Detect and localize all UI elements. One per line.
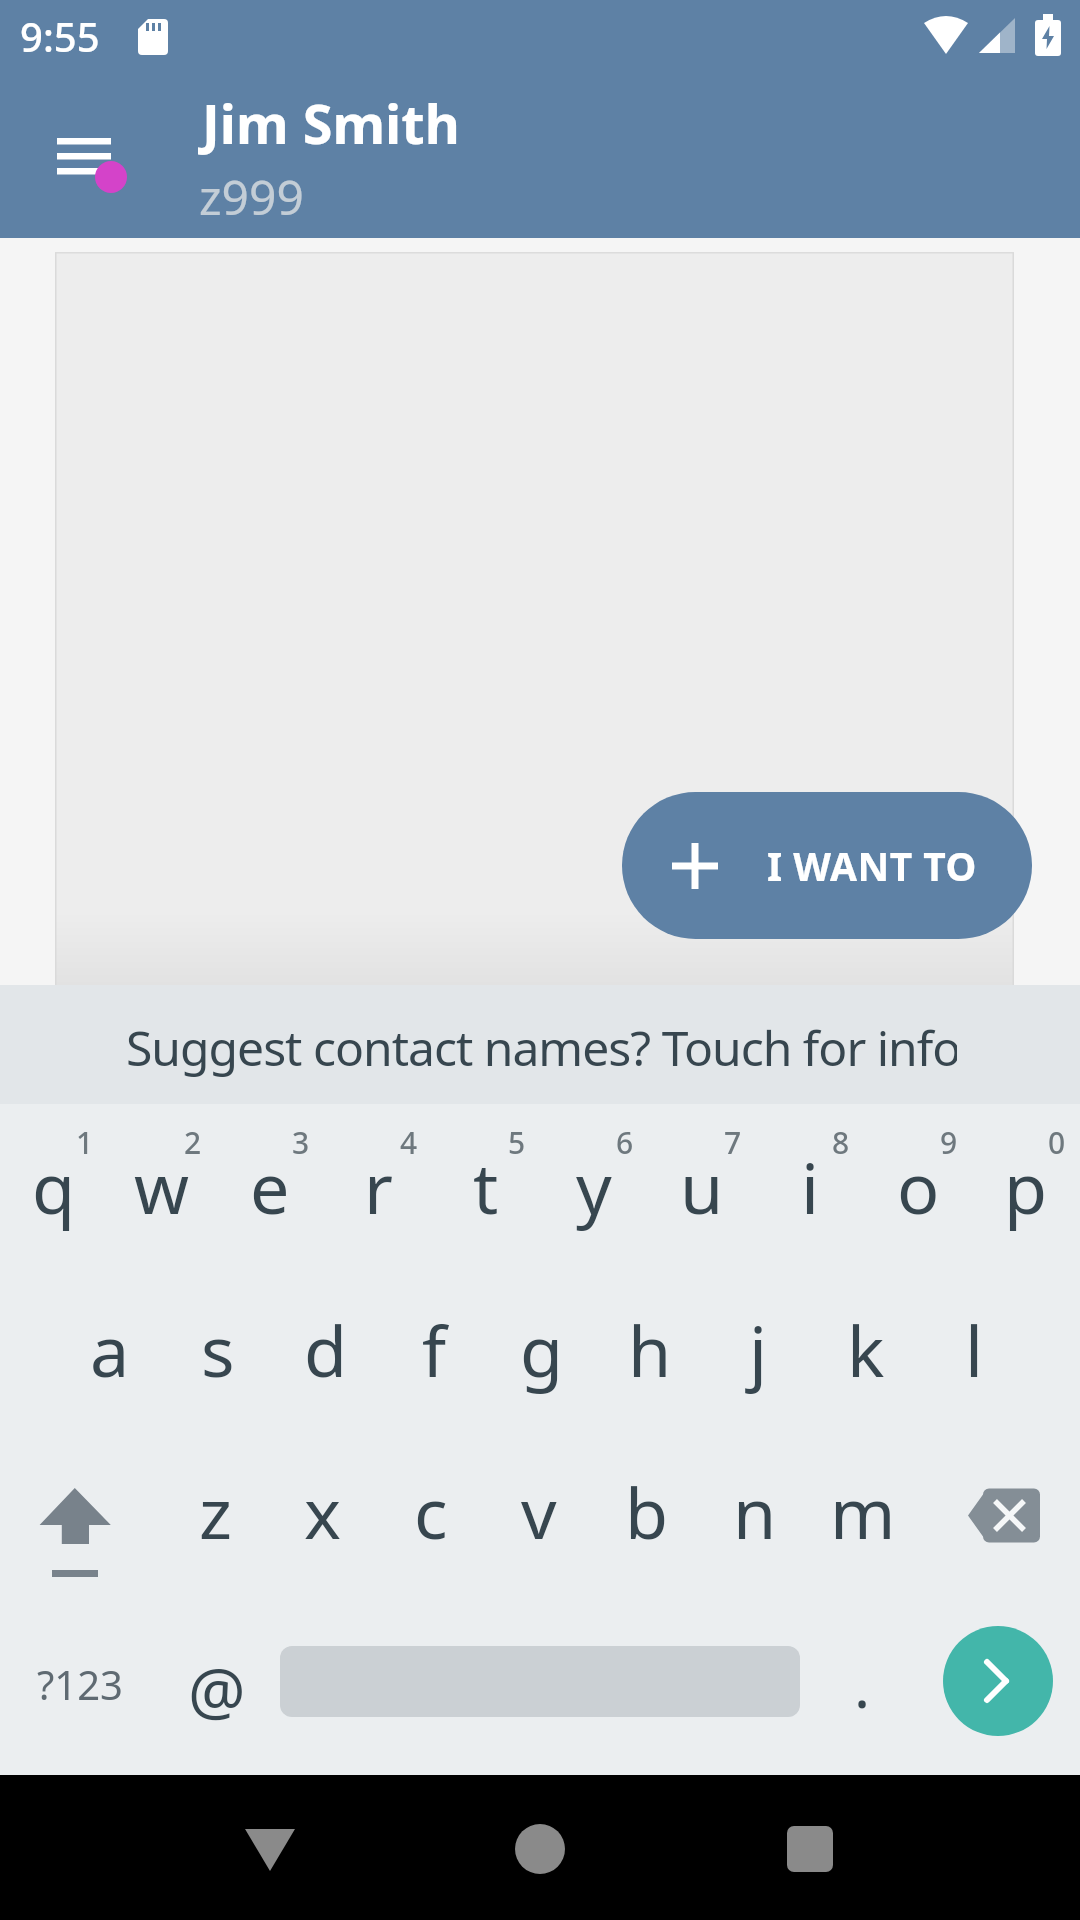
staticText: @ <box>188 1647 246 1734</box>
staticText: 3 <box>292 1122 310 1163</box>
staticText: 4 <box>400 1122 418 1163</box>
button[interactable]: x <box>271 1436 375 1586</box>
staticText: k <box>847 1302 885 1397</box>
staticText: 0 <box>1048 1122 1066 1163</box>
button[interactable]: n <box>703 1436 807 1586</box>
button[interactable]: t <box>434 1111 538 1261</box>
button[interactable] <box>33 114 129 210</box>
staticText: v <box>521 1464 557 1559</box>
staticText: e <box>250 1139 290 1234</box>
staticText: ?123 <box>37 1657 123 1711</box>
button[interactable] <box>762 1801 858 1897</box>
staticText: 5 <box>508 1122 526 1163</box>
button[interactable]: p <box>974 1111 1078 1261</box>
staticText: 2 <box>184 1122 202 1163</box>
button[interactable] <box>222 1801 318 1897</box>
button[interactable]: u <box>650 1111 754 1261</box>
staticText: . <box>854 1644 871 1726</box>
button[interactable] <box>950 1470 1060 1566</box>
staticText: 1 <box>76 1122 94 1163</box>
staticText: 9 <box>940 1122 958 1163</box>
button[interactable]: d <box>274 1274 378 1424</box>
staticText: f <box>422 1302 447 1397</box>
staticText: z999 <box>199 164 304 229</box>
staticText: a <box>90 1302 130 1397</box>
button[interactable]: h <box>598 1274 702 1424</box>
button[interactable]: . <box>817 1625 907 1745</box>
staticText: d <box>304 1302 348 1397</box>
button[interactable]: r <box>326 1111 430 1261</box>
staticText: m <box>830 1464 896 1559</box>
button[interactable]: i <box>758 1111 862 1261</box>
staticText: u <box>680 1139 724 1234</box>
button[interactable]: y <box>542 1111 646 1261</box>
button[interactable]: o <box>866 1111 970 1261</box>
staticText: y <box>576 1139 612 1234</box>
button[interactable]: c <box>379 1436 483 1586</box>
button[interactable]: I WANT TO <box>622 792 1032 939</box>
staticText: q <box>32 1139 76 1234</box>
staticText: o <box>897 1139 940 1234</box>
staticText: j <box>749 1302 768 1397</box>
button[interactable]: g <box>490 1274 594 1424</box>
staticText: i <box>801 1139 820 1234</box>
button[interactable]: a <box>58 1274 162 1424</box>
button[interactable]: @ <box>165 1615 269 1765</box>
staticText: g <box>520 1302 564 1397</box>
button[interactable]: l <box>922 1274 1026 1424</box>
button[interactable]: q <box>2 1111 106 1261</box>
button[interactable]: Suggest contact names? Touch for info <box>0 985 1080 1104</box>
button[interactable]: m <box>811 1436 915 1586</box>
staticText: z <box>199 1464 232 1559</box>
staticText: t <box>473 1139 499 1234</box>
button[interactable] <box>20 1460 130 1580</box>
staticText: 8 <box>832 1122 850 1163</box>
staticText: p <box>1004 1139 1048 1234</box>
staticText: Suggest contact names? Touch for info <box>126 1015 957 1080</box>
staticText: 7 <box>724 1122 742 1163</box>
staticText: b <box>625 1464 669 1559</box>
button[interactable]: w <box>110 1111 214 1261</box>
staticText: 9:55 <box>20 9 100 63</box>
staticText: h <box>628 1302 672 1397</box>
button[interactable]: f <box>382 1274 486 1424</box>
button[interactable] <box>492 1801 588 1897</box>
staticText: x <box>304 1464 342 1559</box>
button[interactable]: j <box>706 1274 810 1424</box>
button[interactable]: e <box>218 1111 322 1261</box>
button[interactable]: ?123 <box>15 1619 145 1749</box>
button[interactable]: s <box>166 1274 270 1424</box>
staticText: 6 <box>616 1122 634 1163</box>
staticText: c <box>414 1464 448 1559</box>
staticText: Jim Smith <box>202 86 460 160</box>
staticText: r <box>364 1139 393 1234</box>
staticText: s <box>201 1302 235 1397</box>
staticText: I WANT TO <box>767 839 977 892</box>
button[interactable]: z <box>163 1436 267 1586</box>
staticText: n <box>733 1464 777 1559</box>
button[interactable]: b <box>595 1436 699 1586</box>
button[interactable] <box>943 1626 1053 1736</box>
staticText: w <box>134 1139 190 1234</box>
button[interactable]: k <box>814 1274 918 1424</box>
staticText: l <box>965 1302 984 1397</box>
button[interactable]: v <box>487 1436 591 1586</box>
